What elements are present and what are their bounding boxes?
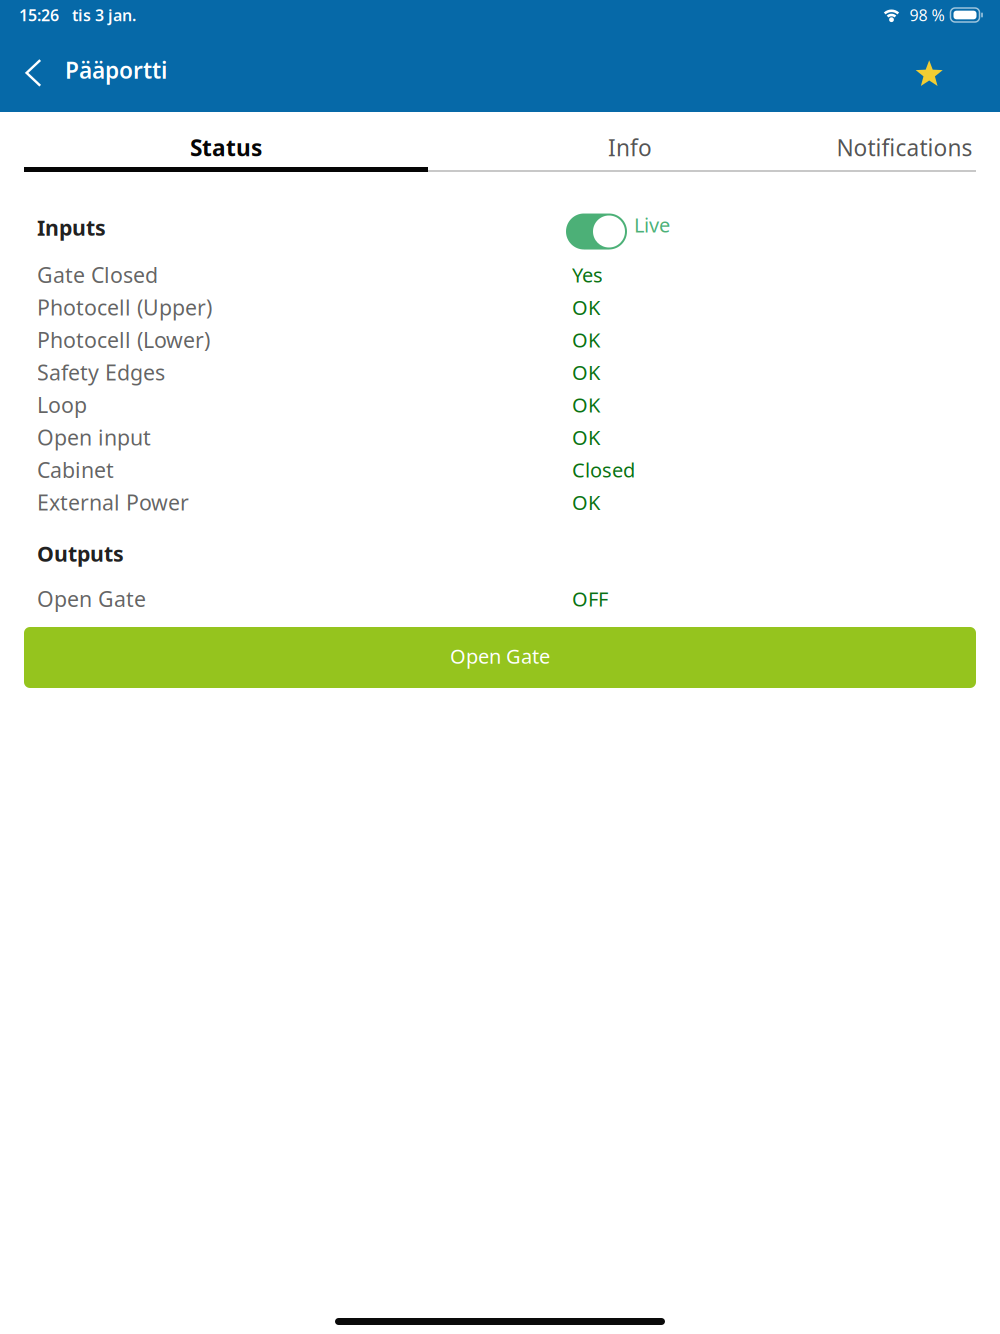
staticText: External Power (37, 488, 189, 516)
staticText: Info (608, 132, 652, 162)
staticText: Closed (572, 456, 635, 483)
staticText: Open Gate (37, 585, 146, 613)
staticText: OK (572, 391, 600, 418)
staticText: Live (634, 211, 670, 238)
staticText: OFF (572, 585, 608, 612)
staticText: Notifications (836, 132, 972, 162)
staticText: tis 3 jan. (72, 4, 136, 26)
staticText: Outputs (37, 539, 124, 568)
staticText: Pääportti (65, 55, 167, 85)
staticText: Inputs (37, 213, 106, 242)
button[interactable]: Info (428, 120, 832, 175)
staticText: Open input (37, 423, 151, 451)
staticText: Photocell (Upper) (37, 293, 212, 321)
button[interactable]: Live updates (566, 205, 976, 249)
staticText: OK (572, 294, 600, 321)
staticText: OK (572, 424, 600, 451)
staticText: Loop (37, 391, 87, 419)
staticText: Open Gate (450, 643, 550, 669)
button[interactable]: Status (24, 120, 428, 175)
button[interactable]: Favourite (892, 33, 1000, 101)
staticText: Photocell (Lower) (37, 326, 210, 354)
staticText: Cabinet (37, 456, 114, 484)
staticText: Status (190, 132, 262, 162)
button[interactable]: Back (0, 33, 65, 101)
button[interactable]: Open Gate (24, 627, 976, 688)
staticText: 15:26 (19, 4, 59, 26)
staticText: OK (572, 489, 600, 516)
staticText: OK (572, 326, 600, 353)
staticText: Yes (572, 261, 603, 288)
staticText: Safety Edges (37, 358, 165, 386)
button[interactable]: Notifications (794, 120, 1000, 175)
staticText: OK (572, 359, 600, 386)
staticText: Gate Closed (37, 261, 158, 289)
staticText: 98 % (909, 4, 944, 26)
